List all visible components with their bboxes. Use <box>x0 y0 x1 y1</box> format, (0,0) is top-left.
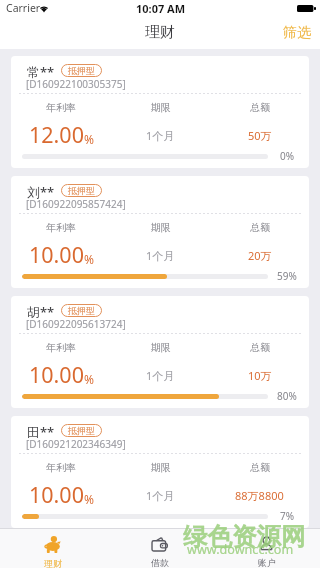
staticText: % <box>84 491 94 507</box>
staticText: 账户 <box>258 557 276 568</box>
staticText: 80% <box>277 389 297 403</box>
staticText: 1个月 <box>146 128 175 143</box>
button[interactable]: 常** <box>11 56 309 168</box>
staticText: 总额 <box>250 341 270 354</box>
staticText: 年利率 <box>46 221 76 234</box>
staticText: 59% <box>277 269 297 283</box>
staticText: 胡** <box>27 303 55 321</box>
staticText: 期限 <box>151 341 171 354</box>
staticText: 总额 <box>250 461 270 474</box>
staticText: 88万8800 <box>235 488 284 503</box>
staticText: [D160922095613724] <box>26 317 126 331</box>
staticText: 刘** <box>27 183 55 201</box>
staticText: 50万 <box>248 128 272 143</box>
staticText: 0% <box>280 149 295 163</box>
staticText: 期限 <box>151 221 171 234</box>
other: 账户 <box>258 536 275 553</box>
staticText: 12.00 <box>29 120 84 149</box>
staticText: 抵押型 <box>68 425 95 436</box>
staticText: 10万 <box>248 368 272 383</box>
staticText: 20万 <box>248 248 272 263</box>
staticText: 年利率 <box>46 341 76 354</box>
staticText: % <box>84 251 94 267</box>
staticText: 常** <box>27 63 55 81</box>
button[interactable]: 刘** <box>11 176 309 288</box>
other: 借款 <box>151 536 168 553</box>
staticText: 10:07 AM <box>136 1 186 16</box>
staticText: % <box>84 131 94 147</box>
other: 理财 <box>44 536 62 554</box>
staticText: [D160921202346349] <box>26 437 126 451</box>
staticText: 1个月 <box>146 368 175 383</box>
staticText: 期限 <box>151 101 171 114</box>
staticText: 10.00 <box>29 360 84 389</box>
staticText: 绿色资源网 <box>183 521 306 552</box>
staticText: 7% <box>280 509 295 523</box>
staticText: 总额 <box>250 221 270 234</box>
staticText: 抵押型 <box>68 305 95 316</box>
button[interactable]: 账户 <box>213 529 320 568</box>
staticText: Carrier <box>6 1 41 15</box>
button[interactable]: 胡** <box>11 296 309 408</box>
staticText: 理财 <box>44 558 62 568</box>
staticText: 年利率 <box>46 461 76 474</box>
staticText: 田** <box>27 423 55 441</box>
staticText: 借款 <box>151 557 169 568</box>
staticText: 1个月 <box>146 248 175 263</box>
button[interactable]: 借款 <box>106 529 213 568</box>
staticText: 期限 <box>151 461 171 474</box>
staticText: 理财 <box>145 23 175 42</box>
staticText: [D160922100305375] <box>26 77 126 91</box>
button[interactable]: 筛选 <box>274 20 320 46</box>
staticText: % <box>84 371 94 387</box>
staticText: 1个月 <box>146 488 175 503</box>
staticText: 年利率 <box>46 101 76 114</box>
staticText: www.downcc.com <box>187 541 294 558</box>
staticText: 筛选 <box>283 24 311 42</box>
staticText: 10.00 <box>29 240 84 269</box>
button[interactable]: 理财 <box>0 529 106 568</box>
staticText: 抵押型 <box>68 185 95 196</box>
staticText: 抵押型 <box>68 65 95 76</box>
staticText: 总额 <box>250 101 270 114</box>
button[interactable]: 田** <box>11 416 309 528</box>
staticText: [D160922095857424] <box>26 197 126 211</box>
staticText: 10.00 <box>29 480 84 509</box>
